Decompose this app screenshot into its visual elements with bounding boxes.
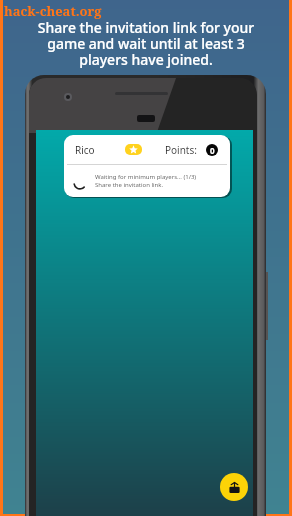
staticText: Rico xyxy=(75,143,95,157)
staticText: Share the invitation link for your game … xyxy=(30,18,262,69)
button[interactable]: Rico xyxy=(64,135,230,197)
staticText: Share the invitation link. xyxy=(95,181,164,189)
staticText: Points: xyxy=(165,143,197,157)
staticText: hack-cheat.org xyxy=(4,2,102,20)
staticText: 0 xyxy=(210,145,215,156)
staticText: Waiting for minimum players... (1/3) xyxy=(95,173,197,181)
button[interactable]: Share xyxy=(220,473,248,501)
